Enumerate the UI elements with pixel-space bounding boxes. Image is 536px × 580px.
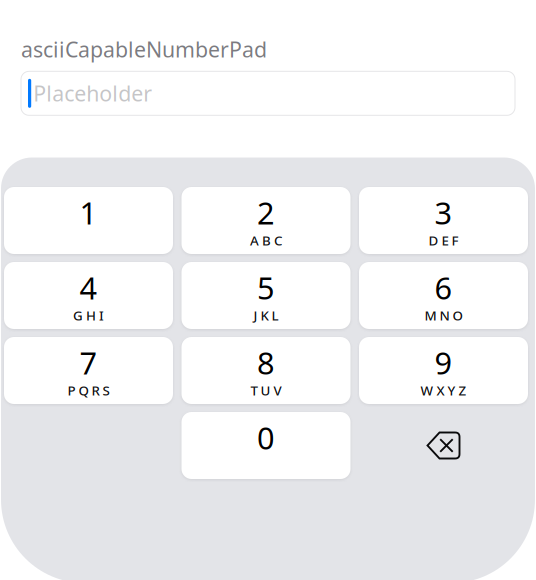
button[interactable]: 3 [359,187,528,254]
staticText: W X Y Z [420,381,466,399]
button[interactable]: Delete [419,424,467,466]
staticText: 0 [257,417,275,458]
staticText: Placeholder [33,79,152,107]
button[interactable]: 0 [181,412,350,479]
staticText: asciiCapableNumberPad [21,35,267,63]
button[interactable]: 8 [181,337,350,404]
button[interactable]: 6 [359,262,528,329]
staticText: 8 [257,342,275,383]
staticText: 2 [257,192,275,233]
button[interactable]: 7 [4,337,173,404]
staticText: 5 [257,267,275,308]
staticText: 4 [79,267,97,308]
button[interactable]: 2 [181,187,350,254]
staticText: P Q R S [67,381,109,399]
button[interactable]: 1 [4,187,173,254]
staticText: 1 [79,192,97,233]
button[interactable]: 9 [359,337,528,404]
staticText: 6 [434,267,452,308]
staticText: J K L [253,306,278,324]
staticText: 9 [434,342,452,383]
button[interactable]: 4 [4,262,173,329]
button[interactable]: 5 [181,262,350,329]
staticText: A B C [250,231,282,249]
staticText: 3 [434,192,452,233]
staticText: G H I [73,306,104,324]
staticText: T U V [250,381,281,399]
staticText: D E F [428,231,458,249]
staticText: 7 [79,342,97,383]
staticText: M N O [424,306,462,324]
